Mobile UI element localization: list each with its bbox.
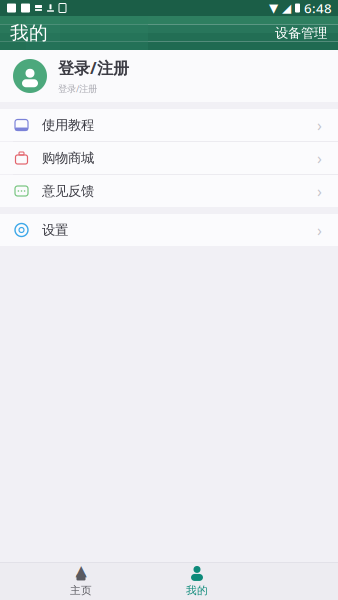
button[interactable]: ▲ <box>46 563 116 599</box>
staticText: › <box>317 114 322 136</box>
button[interactable]: 登录/注册 <box>0 50 338 102</box>
staticText: ◢ <box>282 1 291 15</box>
staticText: 意见反馈 <box>42 183 94 199</box>
button[interactable]: 意见反馈 <box>0 175 338 207</box>
staticText: 使用教程 <box>42 117 94 133</box>
staticText: › <box>317 219 322 241</box>
staticText: 设备管理 <box>275 25 327 41</box>
staticText: 购物商城 <box>42 150 94 166</box>
staticText: 我的 <box>10 21 48 44</box>
staticText: 主页 <box>70 584 92 597</box>
staticText: 登录/注册 <box>58 82 97 95</box>
button[interactable]: 设置 <box>0 214 338 246</box>
staticText: 我的 <box>186 584 208 597</box>
staticText: 设置 <box>42 222 68 238</box>
staticText: 登录/注册 <box>58 57 129 78</box>
staticText: 6:48 <box>304 0 332 17</box>
staticText: ▼ <box>269 1 278 15</box>
staticText: › <box>317 180 322 202</box>
button[interactable]: 设备管理 <box>267 19 335 47</box>
button[interactable]: 使用教程 <box>0 109 338 141</box>
staticText: › <box>317 147 322 169</box>
staticText: ▲ <box>75 562 86 579</box>
button[interactable]: 购物商城 <box>0 142 338 174</box>
button[interactable]: 我的 <box>162 563 232 599</box>
